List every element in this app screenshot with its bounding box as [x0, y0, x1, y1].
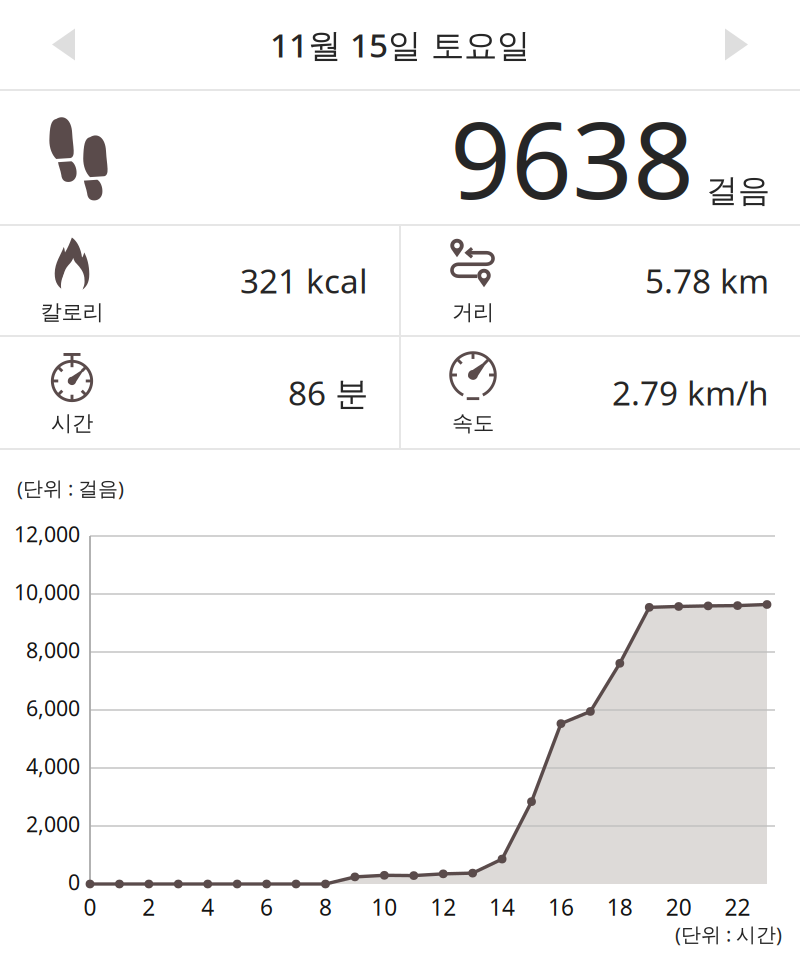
staticText: 시간 — [51, 410, 93, 436]
staticText: (단위 : 시간) — [675, 921, 782, 947]
staticText: 16 — [548, 892, 574, 922]
staticText: 칼로리 — [40, 299, 103, 325]
staticText: 4 — [201, 892, 214, 922]
staticText: 8 — [319, 892, 332, 922]
staticText: 2.79 km/h — [612, 370, 769, 415]
staticText: 4,000 — [26, 752, 80, 780]
staticText: 321 kcal — [240, 258, 368, 303]
staticText: 86 분 — [288, 370, 368, 415]
staticText: 6,000 — [26, 694, 80, 722]
staticText: 10 — [371, 892, 397, 922]
staticText: (단위 : 걸음) — [17, 475, 124, 501]
staticText: 6 — [260, 892, 273, 922]
staticText: 12 — [430, 892, 456, 922]
staticText: 18 — [607, 892, 633, 922]
staticText: 2 — [142, 892, 155, 922]
staticText: 2,000 — [26, 810, 80, 838]
staticText: 12,000 — [14, 520, 80, 548]
staticText: 9638 — [450, 87, 694, 228]
staticText: 거리 — [452, 299, 494, 325]
button[interactable]: Next day — [685, 0, 800, 88]
staticText: 0 — [83, 892, 96, 922]
staticText: 5.78 km — [645, 258, 769, 303]
staticText: 11월 15일 토요일 — [270, 22, 530, 67]
staticText: 22 — [725, 892, 751, 922]
staticText: 14 — [489, 892, 515, 922]
staticText: 20 — [666, 892, 692, 922]
staticText: 8,000 — [26, 636, 80, 664]
button[interactable]: Previous day — [0, 0, 115, 88]
staticText: 10,000 — [14, 578, 80, 606]
staticText: 걸음 — [706, 171, 770, 210]
staticText: 속도 — [452, 410, 494, 436]
staticText: 0 — [68, 868, 80, 896]
